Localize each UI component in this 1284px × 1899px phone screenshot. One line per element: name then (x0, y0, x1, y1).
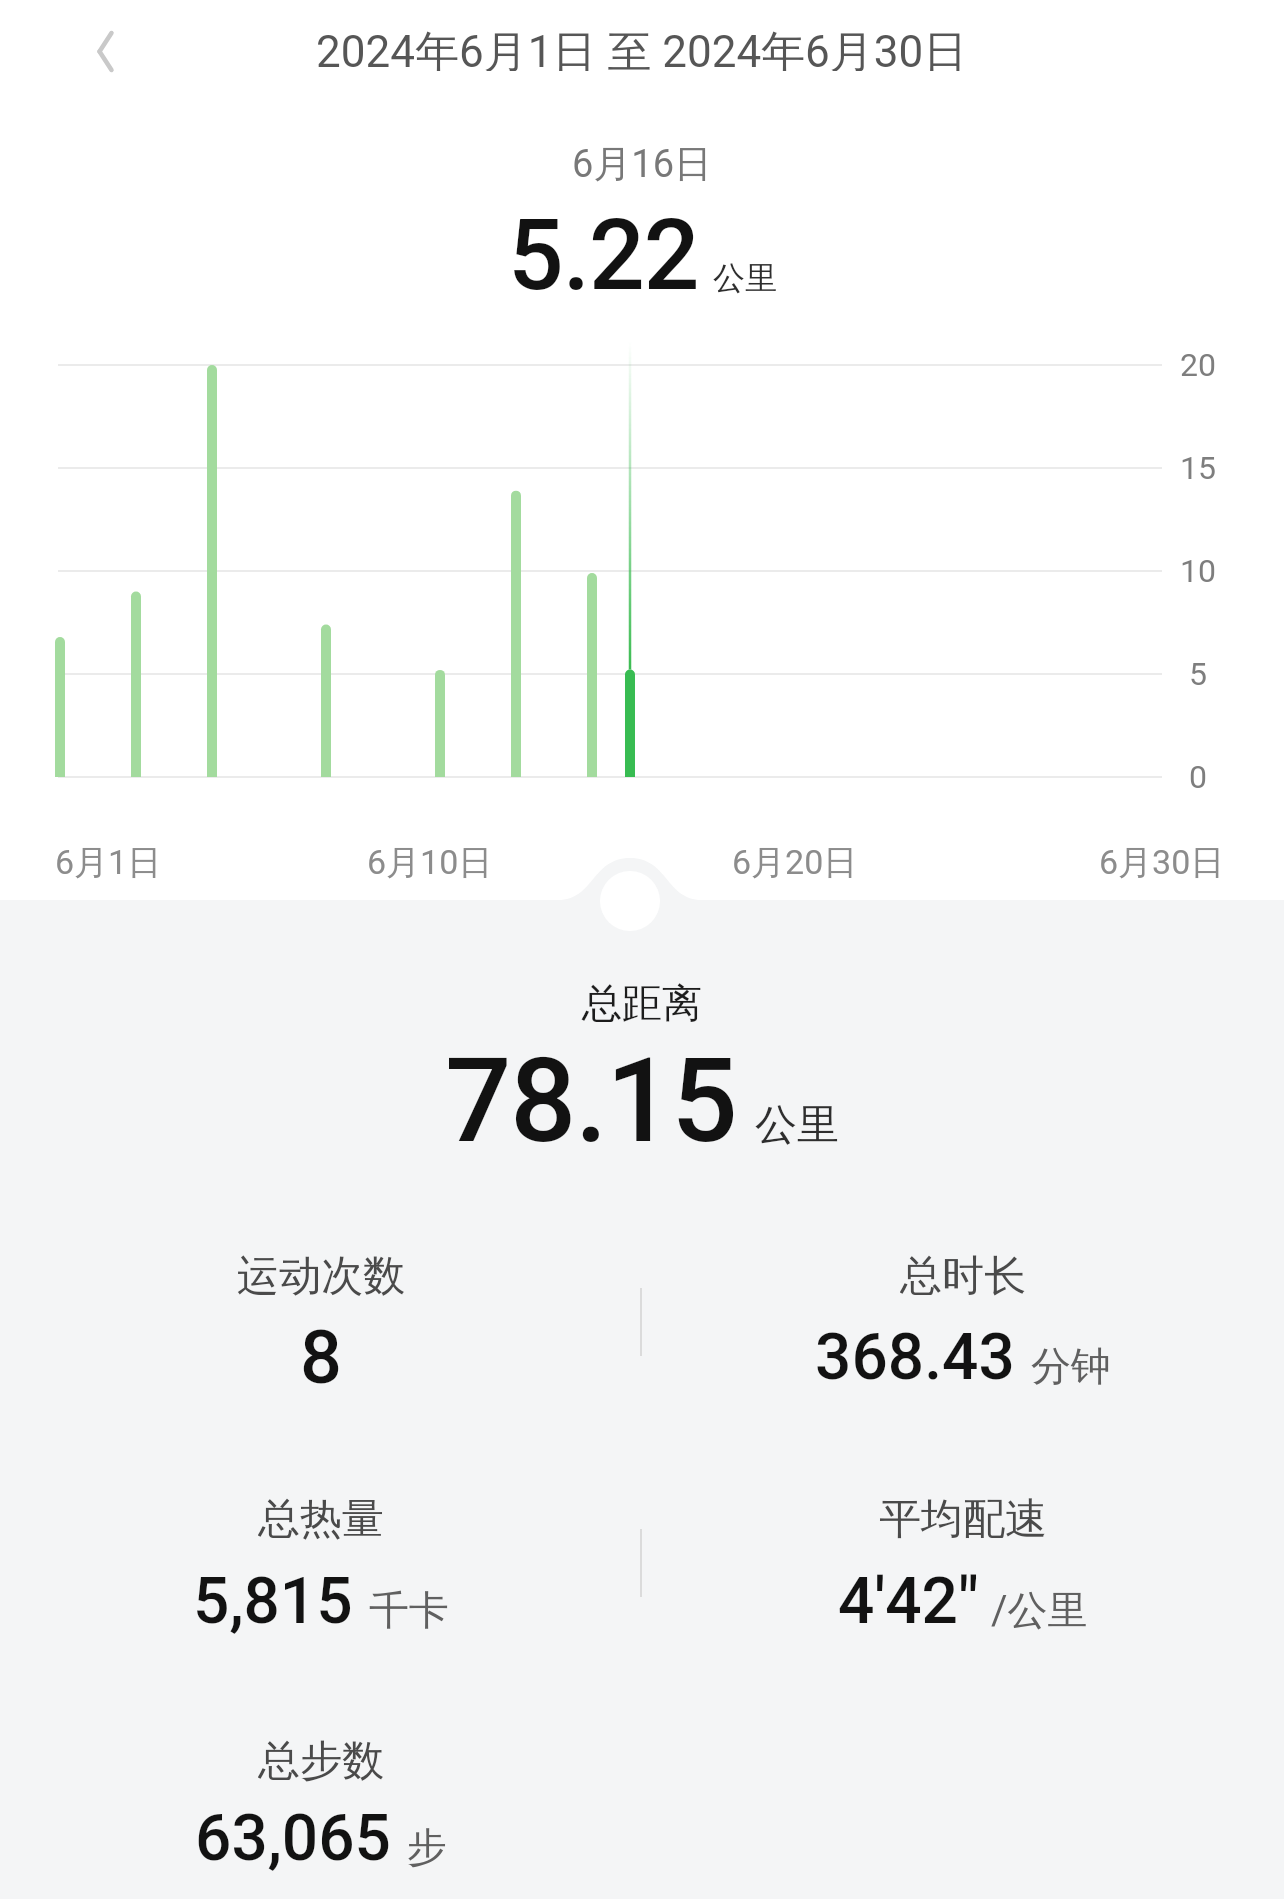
staticText: 公里 (755, 1099, 839, 1152)
staticText: 5,815 (193, 1564, 353, 1639)
staticText: 千卡 (369, 1585, 449, 1635)
staticText: 5.22 (508, 198, 699, 313)
staticText: 20 (1180, 346, 1216, 384)
staticText: 总步数 (258, 1735, 384, 1785)
staticText: 平均配速 (879, 1493, 1047, 1543)
button[interactable] (68, 14, 144, 90)
staticText: 6月20日 (732, 841, 858, 884)
staticText: 总时长 (900, 1250, 1026, 1300)
staticText: 总距离 (582, 978, 702, 1028)
staticText: 10 (1180, 552, 1216, 590)
staticText: 368.43 (815, 1320, 1015, 1395)
staticText: 5 (1189, 655, 1207, 693)
staticText: 6月30日 (1099, 841, 1225, 884)
staticText: 0 (1189, 758, 1207, 796)
staticText: 分钟 (1031, 1341, 1111, 1391)
staticText: 6月10日 (367, 841, 493, 884)
staticText: 2024年6月1日 至 2024年6月30日 (316, 25, 968, 71)
staticText: 步 (407, 1822, 447, 1872)
staticText: 63,065 (195, 1801, 391, 1876)
staticText: 4'42" (838, 1564, 979, 1639)
staticText: 6月1日 (55, 841, 162, 884)
staticText: 6月16日 (572, 140, 713, 186)
staticText: 运动次数 (237, 1250, 405, 1300)
staticText: 78.15 (445, 1032, 737, 1169)
staticText: 总热量 (258, 1493, 384, 1543)
staticText: 公里 (713, 258, 777, 298)
staticText: 8 (300, 1314, 343, 1401)
staticText: 15 (1180, 449, 1216, 487)
staticText: /公里 (991, 1585, 1088, 1635)
